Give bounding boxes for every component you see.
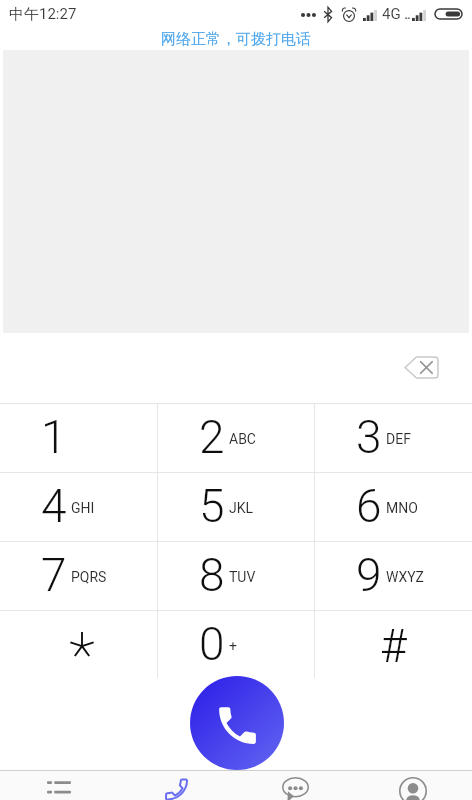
button[interactable]: Dialer bbox=[118, 771, 236, 800]
staticText: 9 bbox=[356, 548, 382, 598]
staticText: ABC bbox=[229, 431, 256, 447]
staticText: JKL bbox=[229, 500, 254, 516]
button[interactable]: 9 bbox=[315, 542, 472, 610]
button[interactable]: 6 bbox=[315, 473, 472, 541]
staticText: GHI bbox=[71, 500, 95, 516]
button[interactable]: Contacts bbox=[354, 771, 472, 800]
staticText: 1 bbox=[41, 410, 67, 460]
button[interactable]: Call bbox=[190, 676, 284, 770]
staticText: TUV bbox=[229, 569, 256, 585]
staticText: 4 bbox=[41, 479, 67, 529]
button[interactable]: 7 bbox=[0, 542, 158, 610]
staticText: 0 bbox=[199, 617, 225, 667]
button[interactable]: # bbox=[315, 611, 472, 678]
staticText: DEF bbox=[386, 431, 411, 447]
staticText: 4G bbox=[382, 5, 401, 23]
staticText: 3 bbox=[356, 410, 382, 460]
staticText: 8 bbox=[199, 548, 225, 598]
staticText: 网络正常，可拨打电话 bbox=[161, 30, 311, 49]
button[interactable] bbox=[0, 611, 158, 678]
staticText: 中午12:27 bbox=[9, 5, 77, 24]
button[interactable]: 5 bbox=[158, 473, 315, 541]
button[interactable]: 1 bbox=[0, 404, 158, 472]
button[interactable]: Delete bbox=[396, 348, 446, 386]
button[interactable]: Messages bbox=[236, 771, 354, 800]
staticText: MNO bbox=[386, 500, 418, 516]
staticText: # bbox=[380, 619, 407, 673]
button[interactable]: 4 bbox=[0, 473, 158, 541]
staticText: 2 bbox=[199, 410, 225, 460]
button[interactable]: 2 bbox=[158, 404, 315, 472]
button[interactable]: 8 bbox=[158, 542, 315, 610]
staticText: PQRS bbox=[71, 569, 107, 585]
staticText: + bbox=[229, 638, 237, 654]
staticText: 5 bbox=[199, 479, 225, 529]
staticText: 7 bbox=[41, 548, 67, 598]
staticText: WXYZ bbox=[386, 569, 424, 585]
staticText: 6 bbox=[356, 479, 382, 529]
button[interactable]: 3 bbox=[315, 404, 472, 472]
button[interactable]: Call log bbox=[0, 771, 118, 800]
button[interactable]: 0 bbox=[158, 611, 315, 678]
